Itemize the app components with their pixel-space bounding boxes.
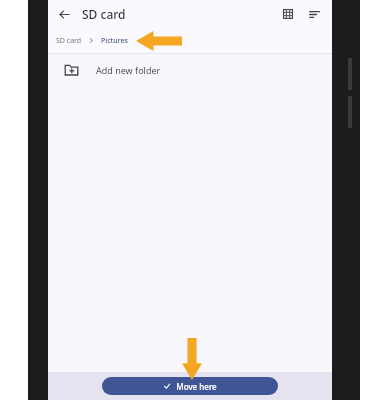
button[interactable]: Move here bbox=[102, 377, 278, 395]
staticText: Pictures bbox=[101, 36, 128, 46]
button[interactable]: Sort bbox=[302, 2, 326, 26]
button[interactable]: Back bbox=[52, 2, 76, 26]
button[interactable]: Pictures bbox=[99, 34, 130, 48]
button[interactable]: Grid view bbox=[276, 2, 300, 26]
staticText: Add new folder bbox=[96, 64, 161, 76]
staticText: SD card bbox=[56, 36, 82, 46]
button[interactable]: SD card bbox=[54, 34, 84, 48]
staticText: SD card bbox=[82, 6, 126, 22]
staticText: Move here bbox=[176, 381, 217, 392]
button[interactable]: Add new folder bbox=[48, 54, 332, 86]
